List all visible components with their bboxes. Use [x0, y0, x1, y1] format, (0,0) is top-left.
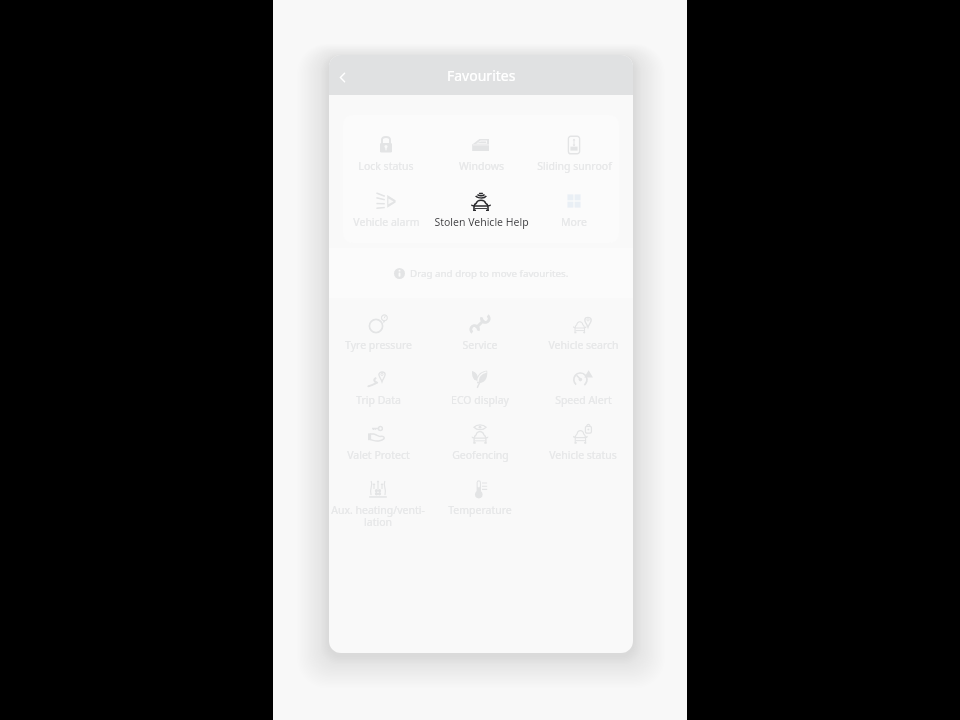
staticText: Vehicle status — [549, 448, 617, 462]
staticText: Sliding sunroof — [537, 159, 612, 173]
staticText: More — [561, 215, 587, 229]
staticText: Aux. heating/venti- lation — [331, 503, 425, 526]
button[interactable]: Aux. heating/venti- lation — [330, 471, 426, 526]
staticText: ECO display — [451, 393, 509, 407]
button[interactable]: Vehicle alarm — [343, 183, 446, 239]
button[interactable]: Stolen Vehicle Help — [421, 183, 541, 239]
staticText: Geofencing — [452, 448, 509, 462]
button[interactable]: Geofencing — [432, 416, 528, 471]
button[interactable]: Back — [329, 64, 355, 90]
button[interactable]: Service — [432, 306, 528, 361]
button[interactable]: Tyre pressure — [330, 306, 426, 361]
button[interactable]: Temperature — [432, 471, 528, 526]
staticText: Speed Alert — [555, 393, 612, 407]
button[interactable]: Windows — [421, 127, 541, 183]
staticText: Drag and drop to move favourites. — [410, 267, 569, 280]
staticText: Favourites — [447, 66, 516, 85]
staticText: Vehicle alarm — [353, 215, 420, 229]
button[interactable]: Vehicle status — [535, 416, 631, 471]
staticText: Service — [462, 338, 498, 352]
button[interactable]: Vehicle search — [535, 306, 631, 361]
staticText: Vehicle search — [548, 338, 619, 352]
staticText: Trip Data — [356, 393, 401, 407]
button[interactable]: Speed Alert — [535, 361, 631, 416]
button[interactable]: Trip Data — [330, 361, 426, 416]
button[interactable]: Lock status — [343, 127, 446, 183]
staticText: Tyre pressure — [345, 338, 412, 352]
button[interactable]: Valet Protect — [330, 416, 426, 471]
button[interactable]: Drag and drop to move favourites. — [329, 248, 633, 298]
button[interactable]: Sliding sunroof — [514, 127, 619, 183]
staticText: Windows — [459, 159, 504, 173]
staticText: Temperature — [448, 503, 512, 517]
button[interactable]: More — [514, 183, 619, 239]
button[interactable]: ECO display — [432, 361, 528, 416]
staticText: Valet Protect — [347, 448, 410, 462]
staticText: Lock status — [358, 159, 414, 173]
staticText: Stolen Vehicle Help — [434, 215, 529, 229]
